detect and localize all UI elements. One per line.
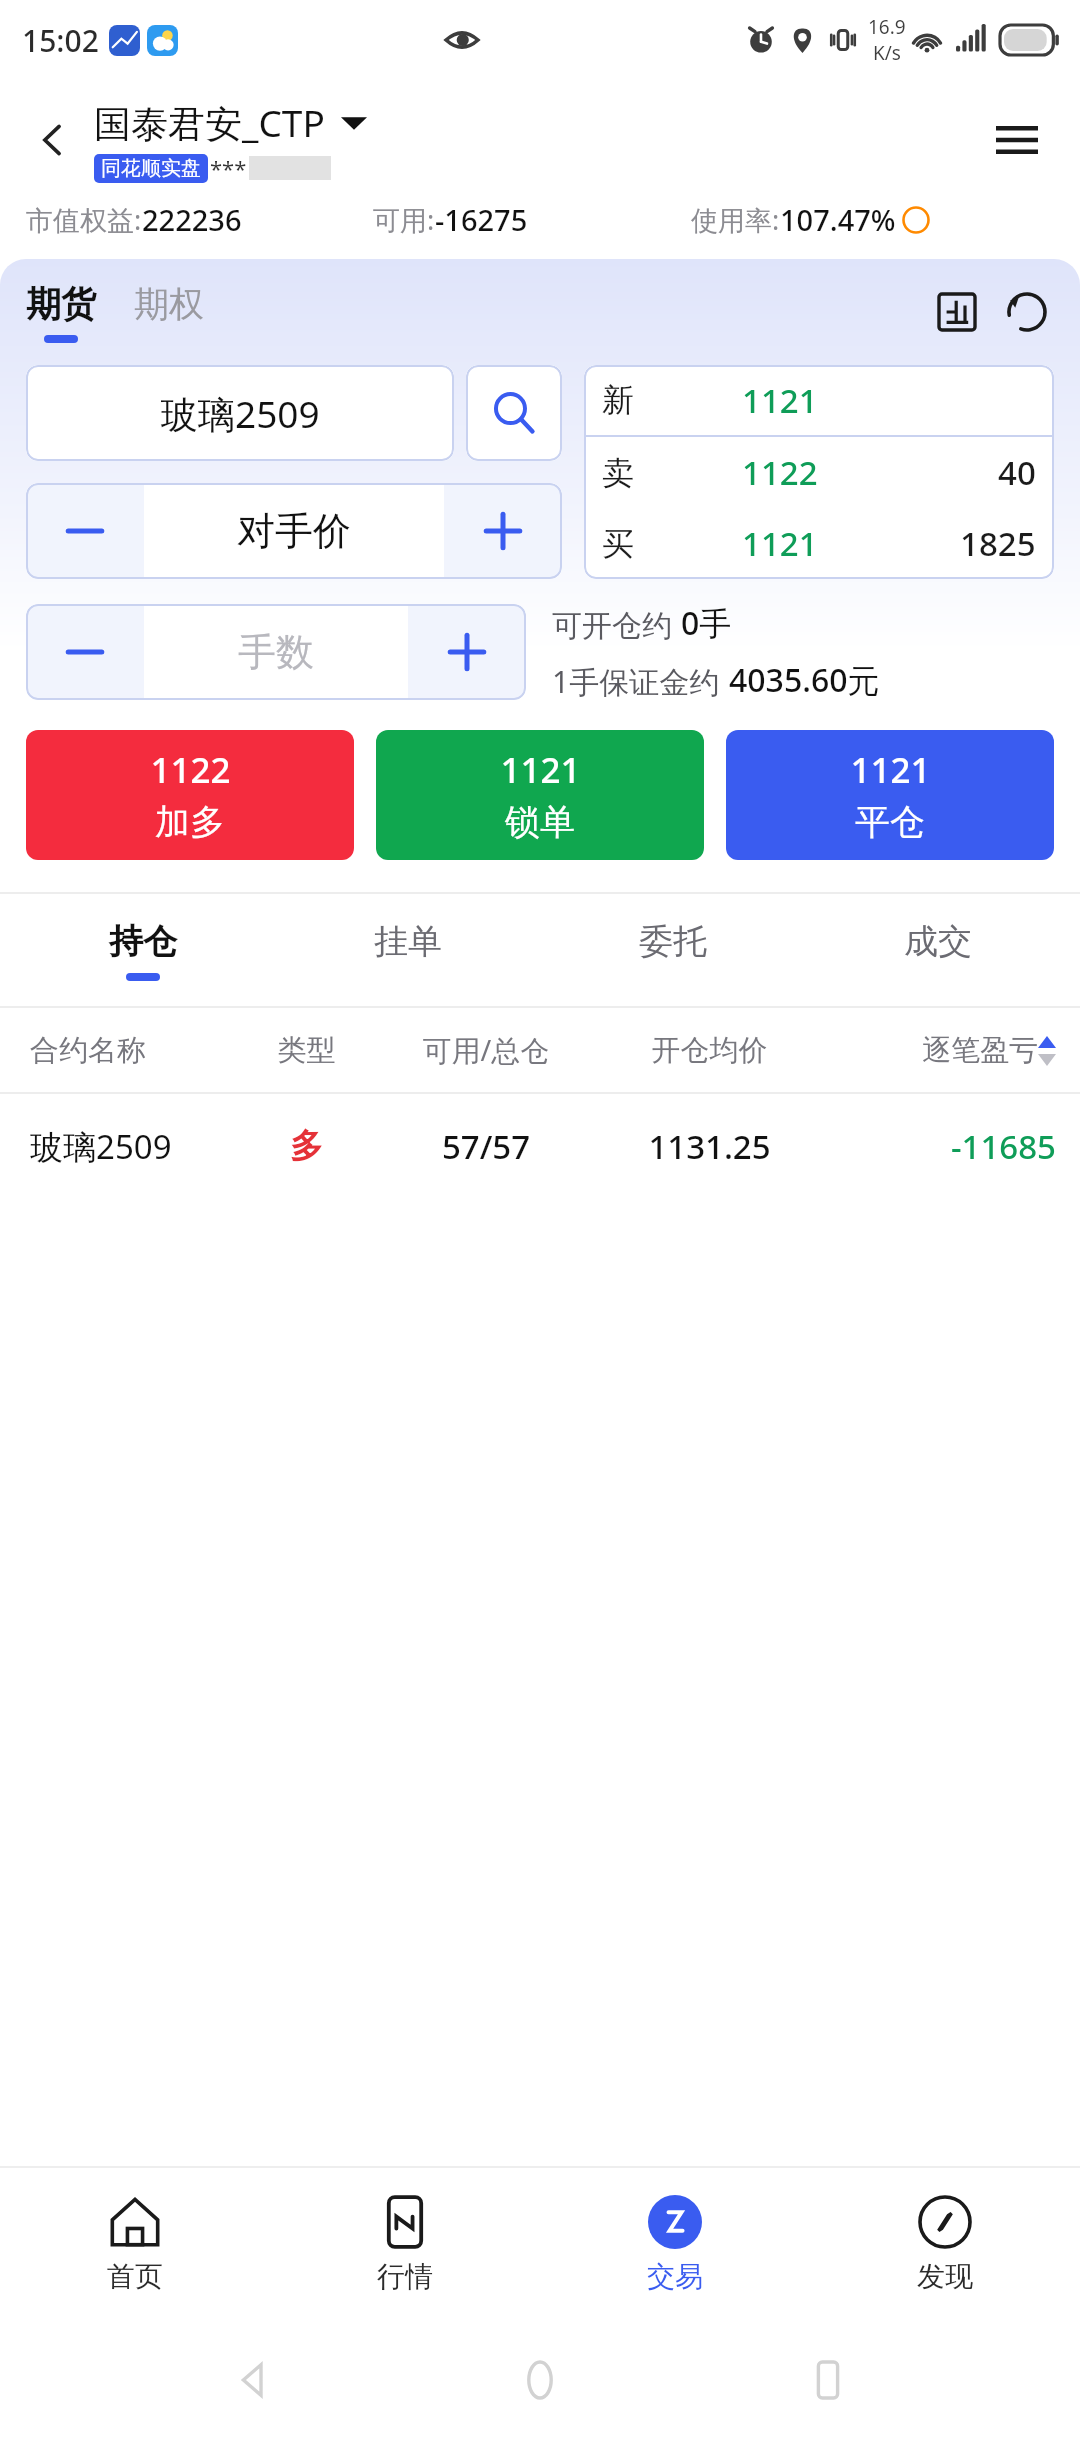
- staticText: 首页: [107, 2259, 163, 2294]
- staticText: 1121: [500, 746, 581, 794]
- button[interactable]: 国泰君安_CTP: [94, 97, 367, 183]
- staticText: 类型: [241, 1032, 372, 1069]
- button[interactable]: 卖: [602, 437, 1036, 508]
- button[interactable]: Refresh: [1000, 285, 1054, 339]
- staticText: 委托: [639, 920, 707, 963]
- button[interactable]: Increase: [444, 483, 562, 579]
- staticText: 行情: [377, 2259, 433, 2294]
- staticText: 发现: [917, 2259, 973, 2294]
- staticText: 挂单: [374, 920, 442, 963]
- button[interactable]: 手数: [144, 604, 408, 700]
- staticText: 1825: [960, 521, 1036, 566]
- button[interactable]: Search: [466, 365, 562, 461]
- staticText: 多: [241, 1125, 372, 1167]
- staticText: 玻璃2509: [30, 1124, 241, 1169]
- staticText: 加多: [155, 800, 225, 844]
- button[interactable]: 期货: [26, 282, 96, 343]
- button[interactable]: 交易: [540, 2168, 810, 2320]
- staticText: -11685: [819, 1124, 1056, 1169]
- staticText: 可用/总仓: [372, 1030, 600, 1070]
- staticText: 锁单: [505, 800, 575, 844]
- staticText: 对手价: [237, 507, 351, 555]
- staticText: 1121: [850, 746, 931, 794]
- staticText: 1121: [742, 378, 818, 423]
- staticText: ***: [210, 153, 247, 183]
- button[interactable]: 委托: [540, 894, 805, 1006]
- button[interactable]: 买: [602, 508, 1036, 579]
- staticText: 期货: [26, 282, 96, 326]
- staticText: 手数: [238, 628, 314, 676]
- staticText: 15:02: [22, 20, 99, 61]
- other: Home: [505, 2345, 575, 2415]
- staticText: 可开仓约: [552, 607, 672, 645]
- button[interactable]: 发现: [810, 2168, 1080, 2320]
- staticText: 国泰君安_CTP: [94, 97, 325, 148]
- staticText: 使用率:: [691, 201, 780, 238]
- staticText: -16275: [435, 200, 528, 239]
- other: Recents: [793, 2345, 863, 2415]
- staticText: 40: [998, 450, 1036, 495]
- button[interactable]: 玻璃2509: [26, 365, 454, 461]
- button[interactable]: 成交: [805, 894, 1070, 1006]
- button[interactable]: 挂单: [275, 894, 540, 1006]
- button[interactable]: 期权: [134, 282, 204, 326]
- staticText: 交易: [647, 2259, 703, 2294]
- staticText: K/s: [873, 40, 901, 66]
- staticText: 平仓: [855, 800, 925, 844]
- staticText: 买: [602, 524, 634, 564]
- button[interactable]: 行情: [270, 2168, 540, 2320]
- staticText: 可用:: [373, 201, 435, 238]
- staticText: 玻璃2509: [161, 388, 320, 439]
- staticText: 1122: [150, 746, 231, 794]
- staticText: 卖: [602, 453, 634, 493]
- staticText: 同花顺实盘: [101, 156, 201, 181]
- staticText: 成交: [904, 920, 972, 963]
- button[interactable]: 止损设置: [930, 285, 984, 339]
- staticText: 222236: [142, 200, 242, 239]
- button[interactable]: Increase: [408, 604, 526, 700]
- staticText: 107.47%: [780, 200, 896, 239]
- button[interactable]: Menu: [984, 107, 1050, 173]
- staticText: 逐笔盈亏: [922, 1032, 1038, 1069]
- staticText: 0手: [681, 601, 732, 645]
- button[interactable]: 1121: [726, 730, 1054, 860]
- staticText: 新: [602, 380, 634, 420]
- button[interactable]: 玻璃2509: [30, 1094, 1056, 1198]
- staticText: 开仓均价: [600, 1032, 819, 1069]
- staticText: 市值权益:: [26, 201, 142, 238]
- staticText: 1手保证金约: [552, 661, 720, 702]
- button[interactable]: 首页: [0, 2168, 270, 2320]
- staticText: 4035.60元: [729, 658, 880, 702]
- staticText: 1131.25: [600, 1124, 819, 1169]
- staticText: 合约名称: [30, 1032, 241, 1069]
- staticText: 期权: [134, 282, 204, 326]
- staticText: 16.9: [868, 14, 906, 40]
- other: Back: [218, 2345, 288, 2415]
- button[interactable]: 持仓: [10, 894, 275, 1006]
- staticText: 1121: [742, 521, 818, 566]
- button[interactable]: Decrease: [26, 483, 144, 579]
- staticText: 1122: [742, 450, 818, 495]
- button[interactable]: Back: [26, 113, 80, 167]
- button[interactable]: 1121: [376, 730, 704, 860]
- button[interactable]: Decrease: [26, 604, 144, 700]
- staticText: 57/57: [372, 1124, 600, 1169]
- button[interactable]: 1122: [26, 730, 354, 860]
- button[interactable]: 对手价: [144, 483, 444, 579]
- button[interactable]: 新: [602, 365, 1036, 435]
- staticText: 持仓: [109, 920, 177, 963]
